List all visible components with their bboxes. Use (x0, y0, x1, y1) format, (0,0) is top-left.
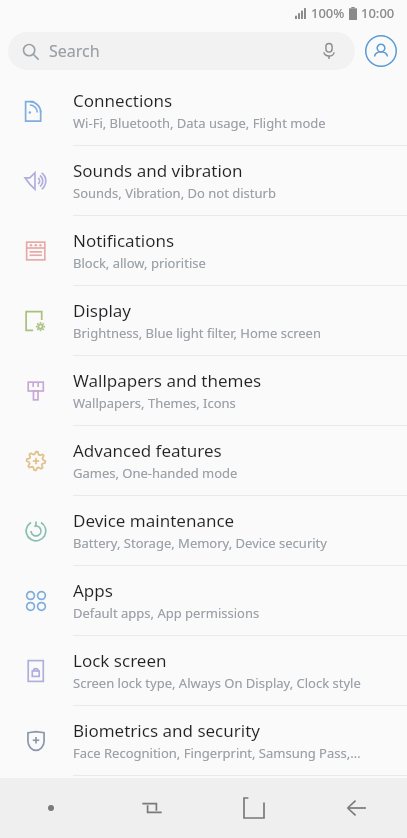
staticText: Sounds, Vibration, Do not disturb (73, 184, 276, 202)
staticText: Lock screen (73, 649, 167, 672)
staticText: Biometrics and security (73, 719, 260, 742)
button[interactable]: Search (8, 32, 355, 70)
button[interactable]: Notifications (0, 216, 407, 285)
button[interactable]: Back (305, 778, 407, 838)
staticText: Display (73, 299, 131, 322)
button[interactable]: Keyboard indicator (0, 778, 101, 838)
button[interactable]: Display (0, 286, 407, 355)
staticText: Wi-Fi, Bluetooth, Data usage, Flight mod… (73, 114, 326, 132)
button[interactable]: Device maintenance (0, 496, 407, 565)
button[interactable]: Wallpapers and themes (0, 356, 407, 425)
staticText: Block, allow, prioritise (73, 254, 206, 272)
staticText: Brightness, Blue light filter, Home scre… (73, 324, 321, 342)
staticText: Connections (73, 89, 173, 112)
staticText: 100% (311, 4, 345, 22)
button[interactable]: Recents (101, 778, 203, 838)
button[interactable]: Lock screen (0, 636, 407, 705)
button[interactable]: Advanced features (0, 426, 407, 495)
staticText: Wallpapers and themes (73, 369, 262, 392)
staticText: Face Recognition, Fingerprint, Samsung P… (73, 744, 361, 762)
button[interactable]: Voice search (317, 39, 341, 63)
button[interactable]: Home (203, 778, 305, 838)
button[interactable]: Account (363, 33, 399, 69)
staticText: Notifications (73, 229, 175, 252)
staticText: Wallpapers, Themes, Icons (73, 394, 236, 412)
staticText: Battery, Storage, Memory, Device securit… (73, 534, 327, 552)
staticText: Apps (73, 579, 113, 602)
button[interactable]: Biometrics and security (0, 706, 407, 775)
staticText: Device maintenance (73, 509, 235, 532)
button[interactable]: Apps (0, 566, 407, 635)
staticText: Games, One-handed mode (73, 464, 238, 482)
button[interactable]: Connections (0, 76, 407, 145)
button[interactable]: Sounds and vibration (0, 146, 407, 215)
staticText: Default apps, App permissions (73, 604, 260, 622)
staticText: Search (49, 40, 100, 62)
staticText: Sounds and vibration (73, 159, 243, 182)
staticText: 10:00 (361, 4, 395, 22)
staticText: Screen lock type, Always On Display, Clo… (73, 674, 361, 692)
staticText: Advanced features (73, 439, 222, 462)
